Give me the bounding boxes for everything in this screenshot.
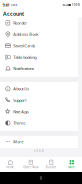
staticText: Theme (13, 120, 25, 126)
button[interactable]: Address Book (0, 29, 78, 40)
staticText: v 3.0.8 (34, 149, 44, 153)
staticText: Address Book (13, 32, 38, 37)
staticText: 100% (72, 3, 80, 7)
button[interactable]: Support (0, 94, 78, 106)
staticText: 9:41 (3, 2, 10, 8)
staticText: Account (3, 10, 24, 17)
staticText: Table booking (13, 54, 36, 60)
button[interactable]: Theme (0, 117, 78, 129)
staticText: Rate App (13, 109, 28, 114)
staticText: Bundle (46, 165, 57, 169)
button[interactable]: Table booking (0, 51, 78, 63)
button[interactable]: Order Now (20, 157, 41, 172)
button[interactable]: More (0, 136, 78, 147)
staticText: More (13, 139, 23, 144)
button[interactable]: Saved Cards (0, 40, 78, 51)
staticText: Reorder (13, 20, 27, 25)
button[interactable]: Bundle (41, 157, 61, 172)
staticText: Order Now (23, 165, 38, 169)
button[interactable]: Reorder (0, 17, 78, 29)
staticText: More (68, 165, 75, 169)
button[interactable]: Home (0, 157, 20, 172)
staticText: About Us (13, 86, 29, 91)
staticText: Support (13, 97, 26, 103)
button[interactable]: Rate App (0, 106, 78, 117)
staticText: Saved Cards (13, 43, 35, 48)
button[interactable]: Notifications (0, 63, 78, 74)
button[interactable]: About Us (0, 83, 78, 94)
staticText: Home (6, 165, 14, 169)
staticText: Notifications (13, 66, 34, 71)
button[interactable]: More (61, 157, 82, 172)
